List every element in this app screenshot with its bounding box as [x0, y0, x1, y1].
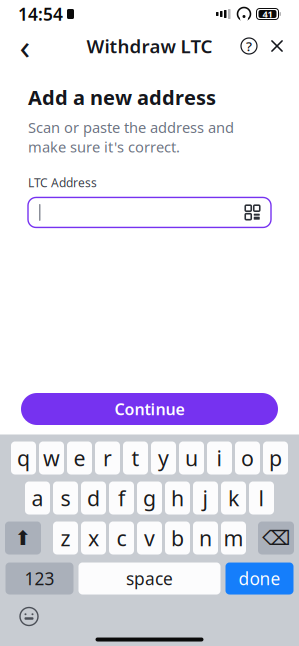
staticText: n [199, 524, 212, 552]
button[interactable]: x [81, 521, 106, 554]
staticText: y [158, 444, 169, 472]
staticText: 123 [24, 567, 54, 590]
staticText: x [88, 524, 99, 552]
staticText: ⬆ [14, 527, 31, 549]
button[interactable]: Back [8, 29, 42, 63]
staticText: Add a new address [28, 84, 216, 111]
button[interactable]: e [67, 441, 92, 474]
staticText: s [60, 484, 70, 512]
button[interactable]: z [53, 521, 78, 554]
staticText: 41 [262, 8, 272, 20]
button[interactable]: Continue [21, 393, 278, 425]
staticText: ? [246, 37, 252, 55]
button[interactable]: done [225, 562, 293, 594]
button[interactable]: d [81, 481, 106, 514]
button[interactable]: m [221, 521, 246, 554]
staticText: Continue [114, 398, 184, 420]
staticText: b [171, 524, 184, 552]
staticText: a [31, 484, 43, 512]
button[interactable]: y [151, 441, 176, 474]
staticText: space [126, 567, 173, 590]
staticText: h [171, 484, 184, 512]
button[interactable]: k [221, 481, 246, 514]
button[interactable]: Emoji [14, 603, 44, 629]
button[interactable]: v [137, 521, 162, 554]
staticText: w [43, 444, 60, 472]
staticText: j [202, 484, 208, 512]
button[interactable]: 123 [5, 562, 73, 594]
staticText: p [269, 444, 282, 472]
staticText: g [143, 484, 156, 512]
button[interactable]: f [109, 481, 134, 514]
button[interactable]: h [165, 481, 190, 514]
button[interactable]: space [78, 562, 220, 594]
button[interactable]: o [235, 441, 260, 474]
staticText: f [118, 484, 125, 512]
staticText: l [258, 484, 264, 512]
button[interactable]: Help [235, 31, 263, 61]
staticText: q [17, 444, 30, 472]
staticText: done [238, 567, 280, 590]
button[interactable]: i [207, 441, 232, 474]
staticText: i [216, 444, 222, 472]
button[interactable]: w [39, 441, 64, 474]
staticText: Withdraw LTC [86, 34, 212, 58]
button[interactable]: c [109, 521, 134, 554]
button[interactable]: t [123, 441, 148, 474]
button[interactable]: Close [263, 31, 291, 61]
staticText: r [103, 444, 112, 472]
button[interactable]: s [53, 481, 78, 514]
button[interactable]: j [193, 481, 218, 514]
staticText: LTC Address [28, 174, 97, 190]
button[interactable]: b [165, 521, 190, 554]
button[interactable]: l [249, 481, 274, 514]
staticText: v [144, 524, 155, 552]
staticText: u [185, 444, 198, 472]
staticText: m [223, 524, 243, 552]
button[interactable]: n [193, 521, 218, 554]
staticText: t [131, 444, 139, 472]
staticText: d [87, 484, 100, 512]
button[interactable]: a [25, 481, 50, 514]
staticText: ‹ [19, 23, 30, 69]
staticText: o [241, 444, 254, 472]
button[interactable]: Shift [5, 521, 41, 554]
staticText: 14:54 [18, 2, 63, 25]
staticText: z [60, 524, 70, 552]
staticText: Scan or paste the address and make sure … [28, 118, 234, 157]
button[interactable]: q [11, 441, 36, 474]
button[interactable]: u [179, 441, 204, 474]
staticText: k [228, 484, 239, 512]
button[interactable]: p [263, 441, 288, 474]
staticText: e [73, 444, 85, 472]
button[interactable]: g [137, 481, 162, 514]
button[interactable]: Delete [258, 521, 294, 554]
staticText: ⌫ [262, 527, 290, 549]
button[interactable]: r [95, 441, 120, 474]
staticText: c [116, 524, 126, 552]
